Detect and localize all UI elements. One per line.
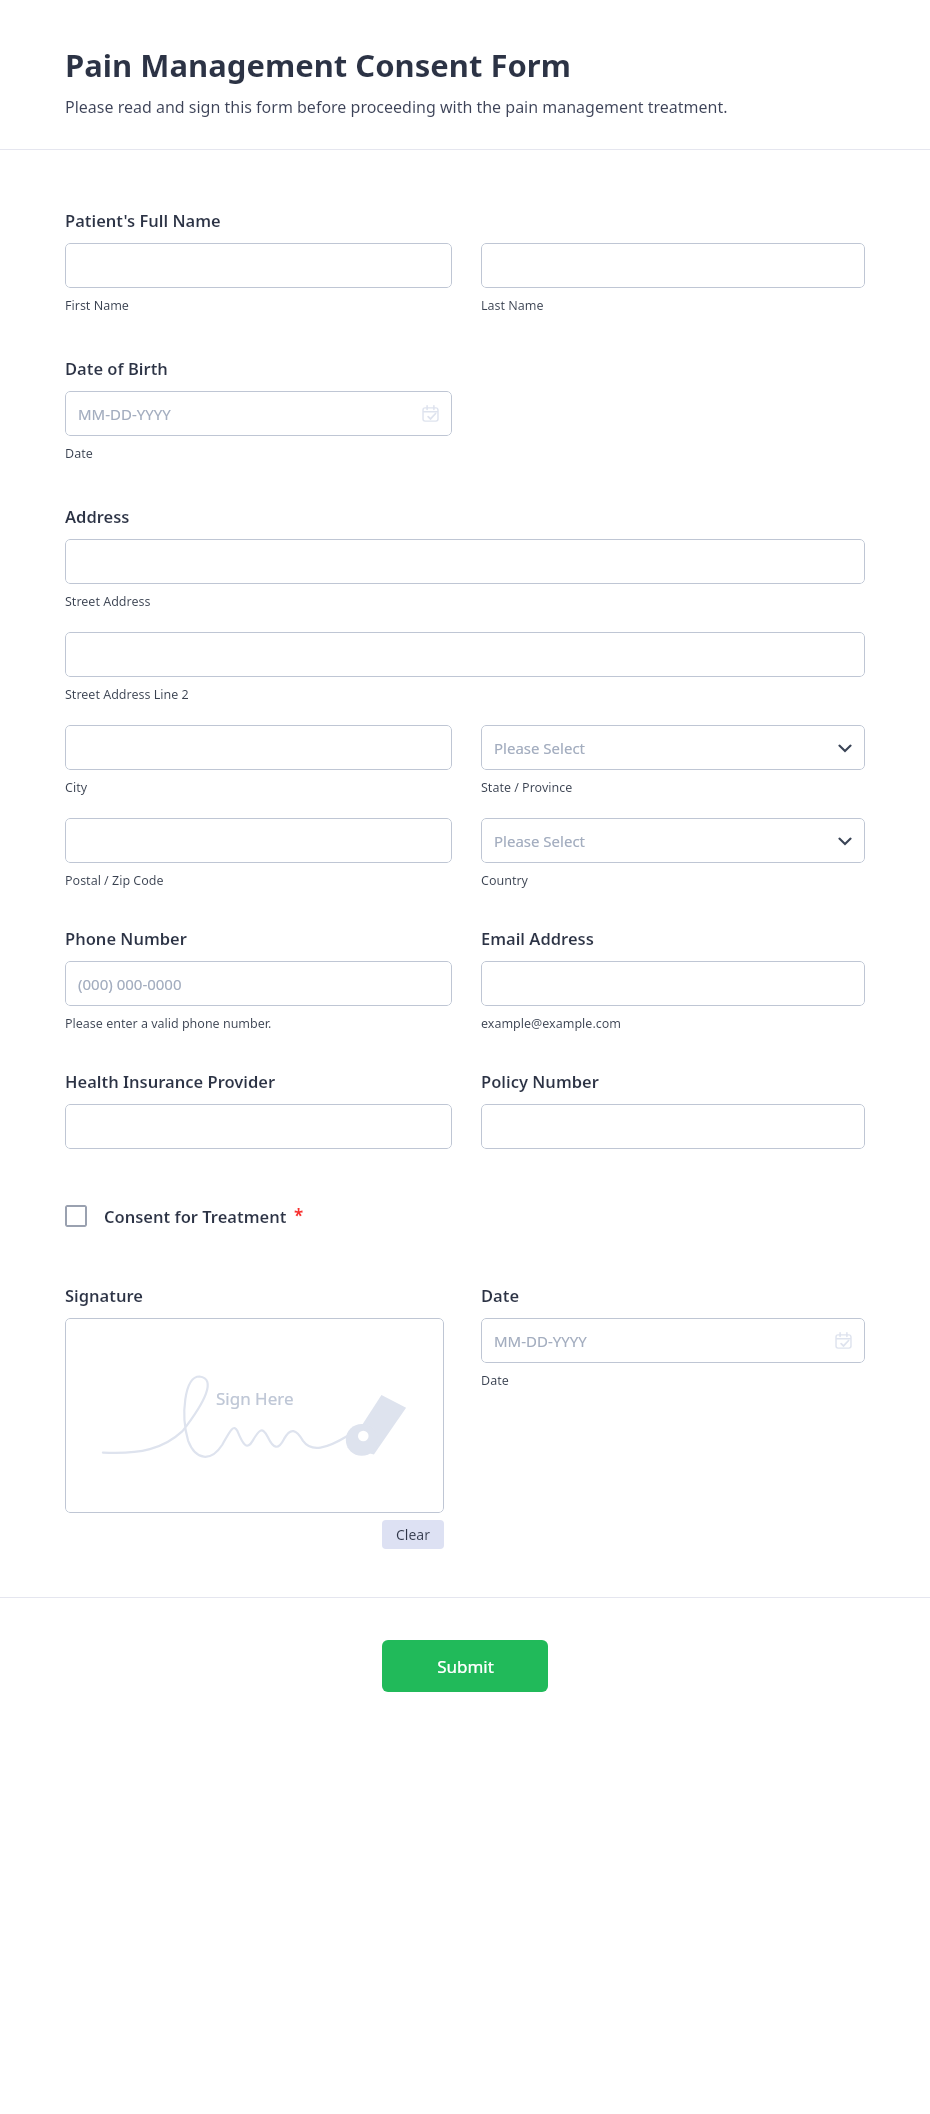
staticText: Address — [65, 505, 130, 527]
staticText: example@example.com — [481, 1015, 621, 1032]
button[interactable]: MM-DD-YYYY — [65, 391, 452, 436]
staticText: Date — [65, 445, 93, 462]
button[interactable]: Consent for Treatment — [65, 1200, 304, 1231]
button[interactable] — [481, 1104, 865, 1149]
button[interactable] — [481, 961, 865, 1006]
button[interactable] — [65, 725, 452, 770]
staticText: Clear — [396, 1525, 430, 1544]
button[interactable] — [65, 539, 865, 584]
button[interactable] — [65, 243, 452, 288]
staticText: Please Select — [494, 738, 586, 758]
staticText: First Name — [65, 297, 129, 314]
button[interactable] — [65, 1104, 452, 1149]
staticText: Please read and sign this form before pr… — [65, 96, 728, 118]
staticText: Country — [481, 872, 528, 889]
staticText: Date of Birth — [65, 357, 168, 379]
staticText: (000) 000-0000 — [78, 974, 182, 994]
staticText: Email Address — [481, 927, 594, 949]
staticText: Street Address Line 2 — [65, 686, 189, 703]
button[interactable] — [481, 243, 865, 288]
button[interactable]: Please Select — [481, 818, 865, 863]
staticText: Please Select — [494, 831, 586, 851]
button[interactable]: Clear — [382, 1520, 444, 1549]
button[interactable]: MM-DD-YYYY — [481, 1318, 865, 1363]
staticText: Policy Number — [481, 1070, 599, 1092]
staticText: Phone Number — [65, 927, 187, 949]
staticText: Please enter a valid phone number. — [65, 1015, 272, 1032]
staticText: Signature — [65, 1284, 143, 1306]
staticText: Street Address — [65, 593, 151, 610]
staticText: Patient's Full Name — [65, 209, 221, 231]
staticText: Health Insurance Provider — [65, 1070, 276, 1092]
button[interactable] — [65, 632, 865, 677]
button[interactable] — [65, 818, 452, 863]
staticText: Pain Management Consent Form — [65, 44, 571, 86]
staticText: Postal / Zip Code — [65, 872, 164, 889]
staticText: Date — [481, 1372, 509, 1389]
staticText: Submit — [437, 1655, 494, 1678]
button[interactable]: Signature pad, sign here — [65, 1318, 444, 1513]
staticText: Last Name — [481, 297, 544, 314]
staticText: * — [294, 1204, 304, 1227]
staticText: City — [65, 779, 88, 796]
button[interactable]: (000) 000-0000 — [65, 961, 452, 1006]
staticText: Consent for Treatment — [104, 1205, 287, 1227]
staticText: State / Province — [481, 779, 573, 796]
staticText: MM-DD-YYYY — [494, 1331, 587, 1351]
staticText: Date — [481, 1284, 520, 1306]
staticText: Sign Here — [216, 1387, 294, 1410]
button[interactable]: Submit — [382, 1640, 548, 1692]
staticText: MM-DD-YYYY — [78, 404, 171, 424]
button[interactable]: Please Select — [481, 725, 865, 770]
